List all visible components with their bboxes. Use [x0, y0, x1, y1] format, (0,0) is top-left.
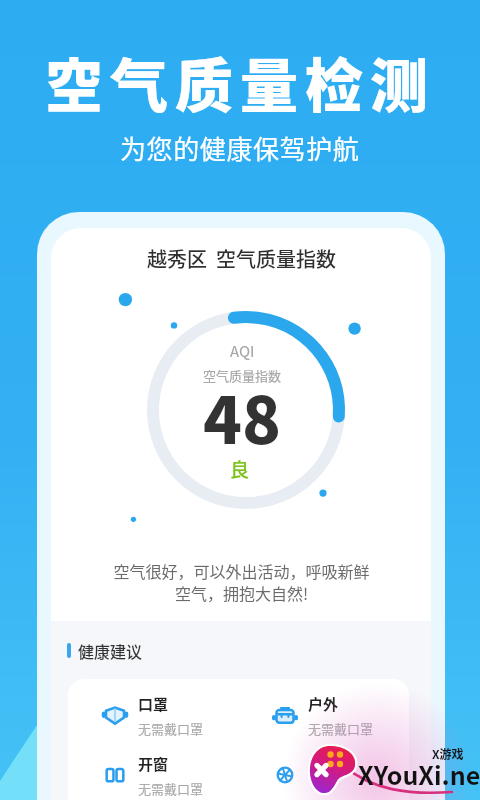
other: 户外	[268, 698, 302, 732]
staticText: AQI	[230, 340, 255, 362]
button[interactable]: 口罩	[68, 692, 238, 738]
button[interactable]: 空气	[238, 752, 409, 798]
staticText: X游戏	[432, 745, 464, 762]
staticText: 空气质量检测	[45, 40, 436, 124]
other: 口罩	[98, 698, 132, 732]
other: 开窗	[98, 758, 132, 792]
button[interactable]: 户外	[238, 692, 409, 738]
button[interactable]: 开窗	[68, 752, 238, 798]
staticText: 开窗	[138, 753, 169, 775]
staticText: 越秀区 空气质量指数	[147, 244, 336, 273]
staticText: 48	[203, 370, 281, 463]
staticText: 无需戴口罩	[138, 779, 204, 798]
other: 空气	[268, 758, 302, 792]
staticText: 空气质量指数	[203, 366, 282, 385]
staticText: 户外	[308, 693, 339, 715]
staticText: 良	[230, 455, 250, 483]
staticText: 口罩	[138, 693, 169, 715]
staticText: XYouXi.net	[358, 756, 480, 792]
staticText: 健康建议	[78, 639, 143, 662]
staticText: 无需戴口罩	[308, 719, 374, 738]
staticText: 为您的健康保驾护航	[120, 129, 360, 167]
staticText: 空气很好，可以外出活动，呼吸新鲜 空气，拥抱大自然!	[113, 559, 370, 605]
staticText: 无需戴口罩	[138, 719, 204, 738]
